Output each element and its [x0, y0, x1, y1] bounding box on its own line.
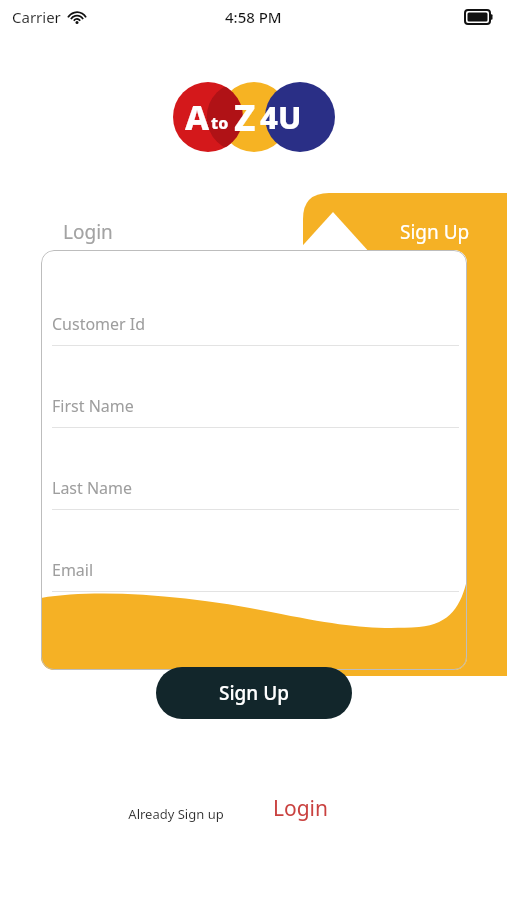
staticText: Sign Up: [400, 219, 470, 245]
button[interactable]: Last Name: [52, 477, 459, 559]
staticText: Last Name: [52, 477, 133, 499]
button[interactable]: Login: [40, 215, 150, 249]
staticText: Email: [52, 559, 94, 581]
staticText: Carrier: [12, 7, 61, 27]
staticText: Login: [273, 794, 329, 823]
staticText: Sign Up: [219, 680, 290, 706]
staticText: A: [185, 94, 210, 140]
button[interactable]: Email: [52, 559, 459, 641]
staticText: First Name: [52, 395, 134, 417]
button[interactable]: Customer Id: [52, 313, 459, 395]
staticText: 4:58 PM: [225, 7, 282, 27]
staticText: 4U: [260, 96, 302, 138]
staticText: Z: [234, 93, 256, 142]
staticText: Customer Id: [52, 313, 146, 335]
staticText: Already Sign up: [128, 805, 224, 823]
button[interactable]: Login: [268, 791, 334, 825]
button[interactable]: Sign Up: [375, 215, 500, 249]
button[interactable]: First Name: [52, 395, 459, 477]
staticText: Login: [63, 219, 113, 245]
button[interactable]: Already Sign up: [120, 800, 232, 828]
button[interactable]: Sign Up: [156, 667, 352, 719]
staticText: to: [211, 112, 229, 134]
